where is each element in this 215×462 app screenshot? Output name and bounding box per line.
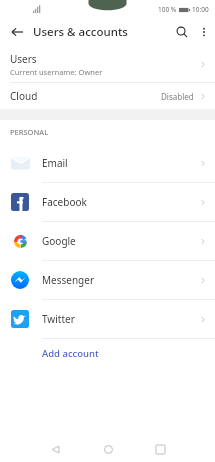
button[interactable]: More options xyxy=(193,21,215,43)
staticText: Users xyxy=(10,52,37,66)
staticText: Cloud xyxy=(10,89,161,103)
button[interactable]: Home xyxy=(97,438,119,460)
button[interactable]: Users xyxy=(0,46,215,82)
staticText: Add account xyxy=(42,347,99,360)
staticText: Email xyxy=(42,156,198,170)
staticText: 10:00 xyxy=(192,5,209,14)
button[interactable]: Facebook xyxy=(0,183,215,221)
staticText: 100 % xyxy=(158,5,177,14)
staticText: PERSONAL xyxy=(10,127,49,137)
staticText: Facebook xyxy=(42,195,198,209)
button[interactable]: Add account xyxy=(0,339,215,367)
staticText: Google xyxy=(42,234,198,248)
button[interactable]: Back xyxy=(8,23,26,41)
staticText: Users & accounts xyxy=(33,24,128,40)
staticText: Disabled xyxy=(161,91,194,102)
button[interactable]: Google xyxy=(0,222,215,260)
button[interactable]: Recent apps xyxy=(149,438,171,460)
button[interactable]: Messenger xyxy=(0,261,215,299)
button[interactable]: Search xyxy=(171,21,193,43)
button[interactable]: Twitter xyxy=(0,300,215,338)
staticText: Messenger xyxy=(42,273,198,287)
button[interactable]: Cloud xyxy=(0,83,215,109)
staticText: Current username: Owner xyxy=(10,67,103,77)
staticText: Twitter xyxy=(42,312,198,326)
button[interactable]: Back xyxy=(44,438,66,460)
button[interactable]: Email xyxy=(0,144,215,182)
